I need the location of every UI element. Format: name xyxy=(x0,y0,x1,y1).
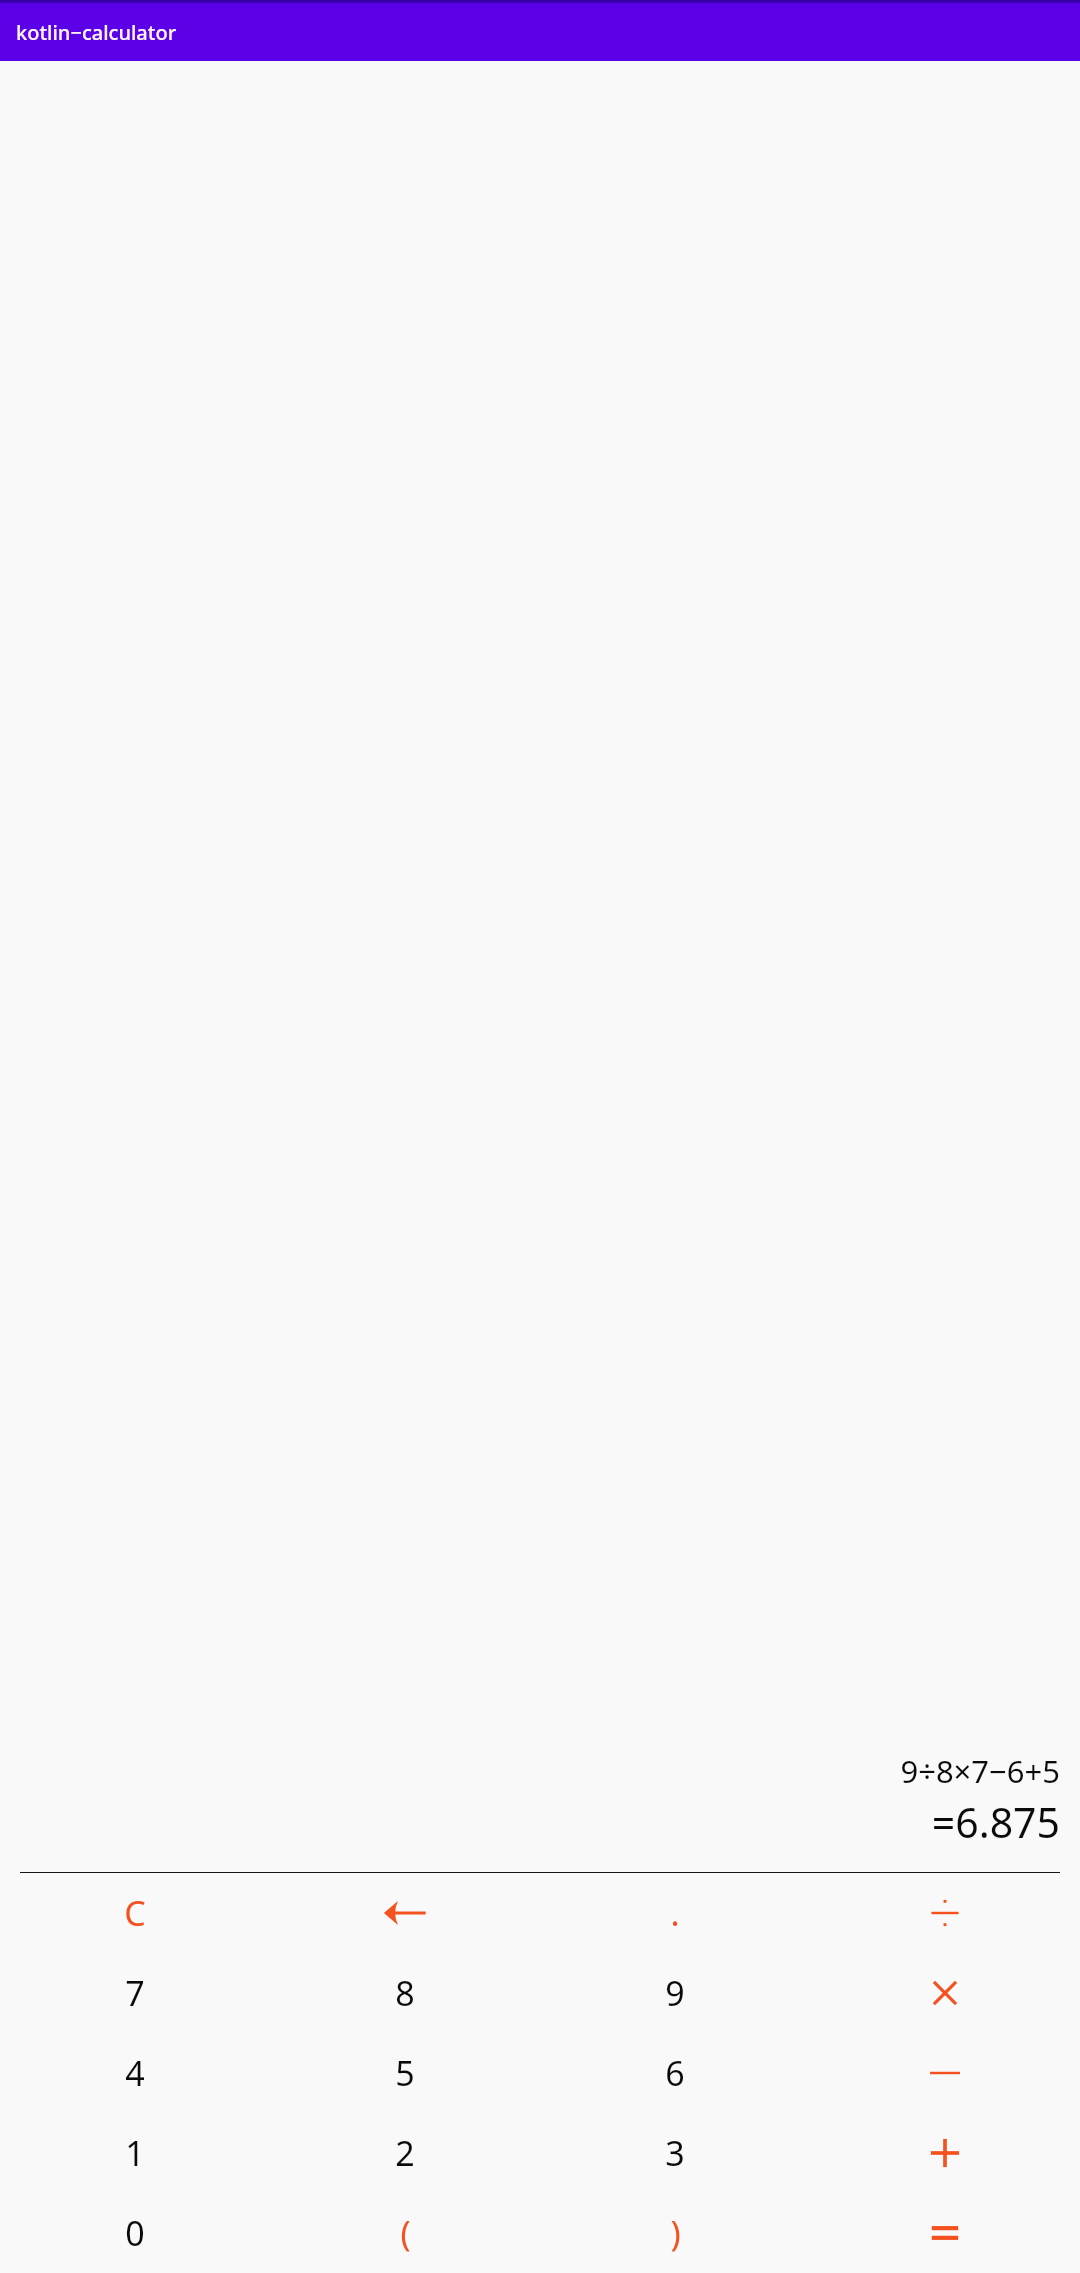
staticText: C xyxy=(124,1890,146,1936)
button[interactable]: Divide xyxy=(810,1873,1080,1953)
button[interactable]: Open parenthesis xyxy=(270,2193,540,2273)
button[interactable]: Decimal point xyxy=(540,1873,810,1953)
staticText: 9÷8×7−6+5 xyxy=(900,1750,1060,1792)
staticText: ) xyxy=(670,2210,681,2256)
button[interactable]: 0 xyxy=(0,2193,270,2273)
staticText: kotlin−calculator xyxy=(16,19,177,46)
staticText: ( xyxy=(400,2210,411,2256)
staticText: 7 xyxy=(125,1970,145,2016)
staticText: 2 xyxy=(395,2130,415,2176)
button[interactable]: 7 xyxy=(0,1953,270,2033)
staticText: 9 xyxy=(665,1970,685,2016)
button[interactable]: 8 xyxy=(270,1953,540,2033)
button[interactable]: 1 xyxy=(0,2113,270,2193)
button[interactable]: Equals xyxy=(810,2193,1080,2273)
staticText: . xyxy=(670,1890,680,1936)
button[interactable]: 6 xyxy=(540,2033,810,2113)
staticText: 4 xyxy=(125,2050,145,2096)
staticText: 3 xyxy=(665,2130,685,2176)
button[interactable]: Minus xyxy=(810,2033,1080,2113)
button[interactable]: 9 xyxy=(540,1953,810,2033)
staticText: 5 xyxy=(395,2050,415,2096)
button[interactable]: 3 xyxy=(540,2113,810,2193)
staticText: 1 xyxy=(125,2130,145,2176)
button[interactable]: 4 xyxy=(0,2033,270,2113)
button[interactable]: Backspace xyxy=(270,1873,540,1953)
button[interactable]: 5 xyxy=(270,2033,540,2113)
staticText: 0 xyxy=(125,2210,145,2256)
button[interactable]: Plus xyxy=(810,2113,1080,2193)
staticText: 6 xyxy=(665,2050,685,2096)
button[interactable]: Clear xyxy=(0,1873,270,1953)
button[interactable]: Multiply xyxy=(810,1953,1080,2033)
staticText: =6.875 xyxy=(931,1794,1060,1850)
button[interactable]: 2 xyxy=(270,2113,540,2193)
button[interactable]: Close parenthesis xyxy=(540,2193,810,2273)
staticText: 8 xyxy=(395,1970,415,2016)
